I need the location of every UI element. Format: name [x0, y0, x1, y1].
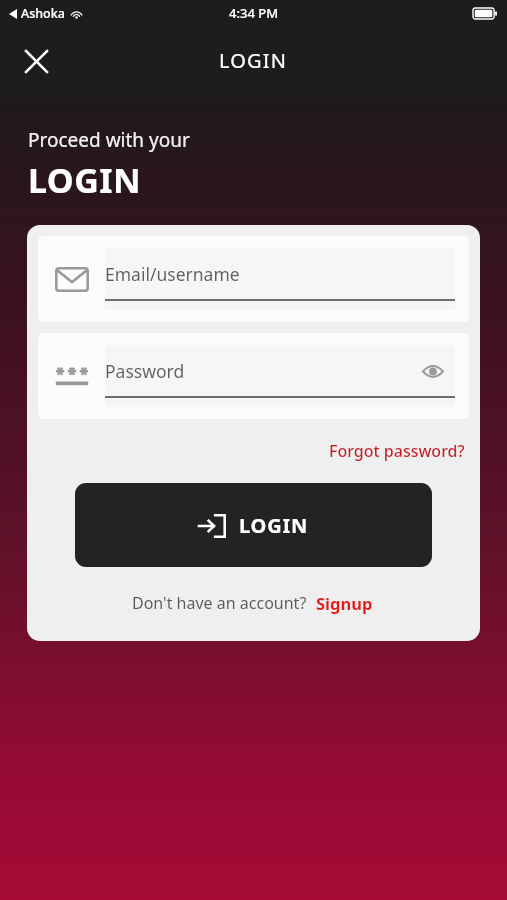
- staticText: Forgot password?: [329, 440, 465, 462]
- staticText: 4:34 PM: [229, 4, 279, 22]
- staticText: Don't have an account?: [132, 592, 307, 614]
- button[interactable]: Password: [38, 333, 469, 419]
- staticText: LOGIN: [28, 157, 142, 203]
- button[interactable]: Show password: [417, 355, 449, 387]
- button[interactable]: Signup: [314, 590, 375, 616]
- staticText: Proceed with your: [28, 127, 190, 153]
- staticText: Ashoka: [21, 5, 65, 22]
- staticText: LOGIN: [239, 512, 309, 539]
- staticText: Email/username: [105, 262, 240, 286]
- button[interactable]: Email/username: [38, 236, 469, 322]
- staticText: Signup: [316, 592, 373, 614]
- button[interactable]: Close: [14, 39, 58, 83]
- button[interactable]: Forgot password?: [325, 438, 469, 464]
- button[interactable]: LOGIN: [75, 483, 432, 567]
- staticText: Password: [105, 359, 185, 383]
- staticText: LOGIN: [219, 47, 288, 74]
